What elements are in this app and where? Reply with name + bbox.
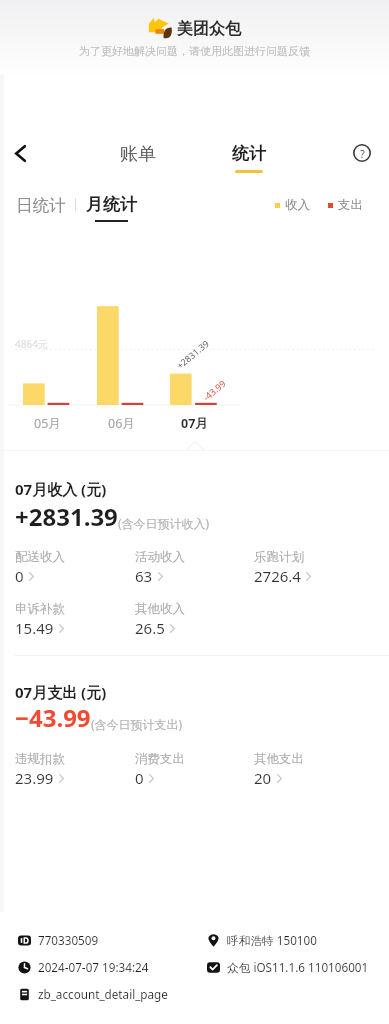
staticText: 其他收入 xyxy=(135,601,185,617)
staticText: 07月支出 (元) xyxy=(15,682,107,702)
staticText: 07月 xyxy=(181,415,208,432)
staticText: 统计 xyxy=(232,143,266,164)
staticText: 15.49 xyxy=(15,618,54,638)
button[interactable]: 活动收入 xyxy=(135,549,185,586)
button[interactable]: 其他支出 xyxy=(254,751,304,788)
button[interactable]: 违规扣款 xyxy=(15,751,65,788)
staticText: 账单 xyxy=(120,143,156,166)
staticText: 日统计 xyxy=(16,195,66,216)
staticText: 其他支出 xyxy=(254,751,304,767)
staticText: 2726.4 xyxy=(254,566,301,586)
staticText: 消费支出 xyxy=(135,751,185,767)
staticText: (含今日预计收入) xyxy=(118,515,210,531)
button[interactable]: 乐跑计划 xyxy=(254,549,311,586)
button[interactable]: 月统计 xyxy=(86,194,137,222)
button[interactable]: 统计 xyxy=(228,140,270,176)
staticText: 4864元 xyxy=(15,337,48,351)
button[interactable]: Back xyxy=(6,139,34,167)
staticText: −43.99 xyxy=(15,701,91,734)
staticText: 07月收入 (元) xyxy=(15,479,107,499)
staticText: +2831.39 xyxy=(15,500,118,533)
staticText: 呼和浩特 150100 xyxy=(227,932,317,948)
staticText: 2024-07-07 19:34:24 xyxy=(38,959,149,975)
button[interactable]: 申诉补款 xyxy=(15,601,65,638)
button[interactable]: 消费支出 xyxy=(135,751,185,788)
staticText: 63 xyxy=(135,566,153,586)
staticText: zb_account_detail_page xyxy=(38,986,168,1002)
staticText: +2831.39 xyxy=(174,337,211,371)
staticText: 06月 xyxy=(108,415,135,432)
staticText: 23.99 xyxy=(15,768,54,788)
staticText: 0 xyxy=(15,566,24,586)
staticText: 支出 xyxy=(338,197,363,213)
staticText: 美团众包 xyxy=(177,19,241,39)
staticText: 为了更好地解决问题，请使用此图进行问题反馈 xyxy=(79,44,310,58)
button[interactable]: 日统计 xyxy=(16,195,66,216)
staticText: (含今日预计支出) xyxy=(91,716,183,732)
staticText: 26.5 xyxy=(135,618,165,638)
staticText: 20 xyxy=(254,768,272,788)
staticText: 申诉补款 xyxy=(15,601,65,617)
staticText: 配送收入 xyxy=(15,549,65,565)
staticText: 众包 iOS11.1.6 110106001 xyxy=(227,959,369,975)
staticText: 收入 xyxy=(285,197,310,213)
staticText: 乐跑计划 xyxy=(254,549,304,565)
staticText: 违规扣款 xyxy=(15,751,65,767)
button[interactable]: 账单 xyxy=(116,140,160,169)
staticText: ? xyxy=(360,146,365,161)
button[interactable]: 配送收入 xyxy=(15,549,65,586)
button[interactable]: Help xyxy=(348,139,376,167)
staticText: 活动收入 xyxy=(135,549,185,565)
staticText: 0 xyxy=(135,768,144,788)
staticText: 05月 xyxy=(34,415,61,432)
button[interactable]: 其他收入 xyxy=(135,601,185,638)
staticText: 770330509 xyxy=(38,932,99,948)
staticText: 月统计 xyxy=(86,194,137,215)
staticText: -43.99 xyxy=(200,377,228,403)
